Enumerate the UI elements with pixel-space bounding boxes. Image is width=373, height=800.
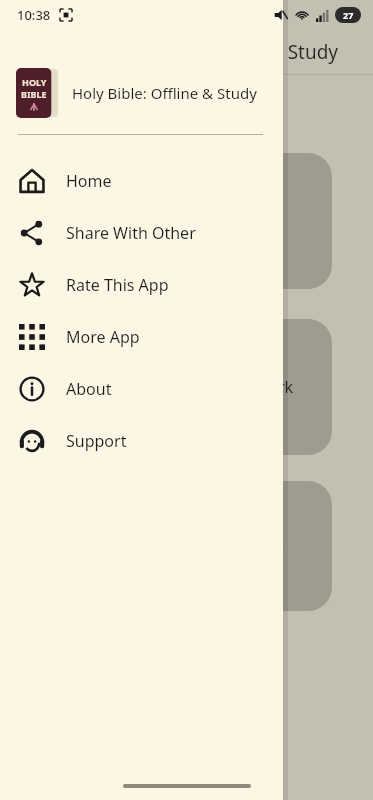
button[interactable]: About	[0, 363, 283, 415]
staticText: More App	[66, 326, 140, 348]
button[interactable]: Home	[0, 155, 283, 207]
staticText: Share With Other	[66, 222, 196, 244]
button[interactable]: Rate This App	[0, 259, 283, 311]
staticText: mark	[254, 376, 294, 398]
button[interactable]: ight	[252, 481, 332, 611]
staticText: About	[66, 378, 112, 400]
staticText: Support	[66, 430, 127, 452]
staticText: Holy Bible: Offline & Study	[72, 83, 257, 103]
staticText: HOLY	[22, 76, 47, 88]
staticText: Holy Bible: Offline & Study	[104, 39, 339, 65]
staticText: 27	[343, 9, 354, 21]
staticText: Home	[66, 170, 112, 192]
button[interactable]: More App	[0, 311, 283, 363]
staticText: 10:38	[17, 6, 51, 24]
other: App icon	[16, 68, 58, 118]
staticText: ight	[254, 535, 284, 557]
button[interactable]: Support	[0, 415, 283, 467]
button[interactable]: App icon	[0, 64, 283, 122]
staticText: BIBLE	[21, 88, 47, 100]
button[interactable]: ark	[252, 153, 332, 289]
staticText: Rate This App	[66, 274, 169, 296]
button[interactable]: mark	[252, 319, 332, 455]
button[interactable]: Share With Other	[0, 207, 283, 259]
